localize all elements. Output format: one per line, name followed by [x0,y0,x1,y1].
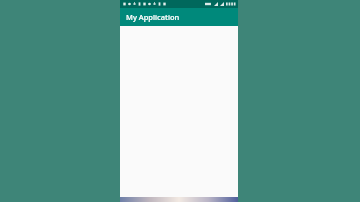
button[interactable]: My Application [120,8,238,26]
button[interactable]: Navigation bar [120,197,238,202]
staticText: My Application [126,12,180,22]
